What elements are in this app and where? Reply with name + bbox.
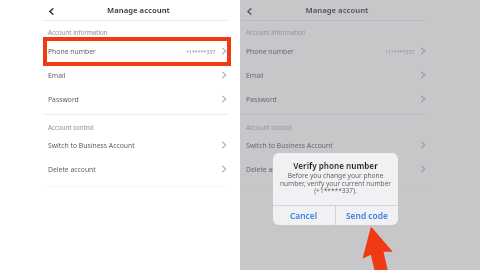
staticText: Account control [246, 123, 292, 131]
button[interactable]: Switch to Business Account [241, 135, 427, 155]
button[interactable]: Phone number [241, 41, 427, 61]
button[interactable]: Send code [336, 206, 398, 225]
button[interactable]: Password [241, 89, 427, 109]
staticText: Cancel [290, 210, 318, 221]
staticText: +1*****337 [385, 48, 415, 55]
button[interactable]: Phone number [43, 41, 228, 61]
button[interactable]: Email [241, 65, 427, 85]
staticText: Phone number [48, 47, 96, 56]
staticText: Send code [346, 210, 388, 221]
staticText: Account information [48, 28, 108, 36]
staticText: Switch to Business Account [48, 141, 135, 150]
staticText: Account control [48, 123, 94, 131]
button[interactable]: Back [44, 4, 58, 18]
button[interactable]: Cancel [273, 206, 335, 225]
button[interactable]: Email [43, 65, 228, 85]
staticText: Password [48, 95, 79, 104]
staticText: +1*****337 [186, 48, 216, 55]
staticText: Before you change your phone number, ver… [278, 171, 393, 195]
staticText: Email [48, 71, 66, 80]
staticText: Switch to Business Account [246, 141, 333, 150]
button[interactable]: Delete account [241, 159, 427, 179]
staticText: Verify phone number [273, 160, 398, 171]
staticText: Manage account [244, 5, 430, 15]
staticText: Delete account [48, 165, 96, 174]
staticText: Password [246, 95, 277, 104]
staticText: Delete account [246, 165, 294, 174]
button[interactable]: Delete account [43, 159, 228, 179]
button[interactable]: Back [242, 4, 256, 18]
staticText: Phone number [246, 47, 294, 56]
staticText: Email [246, 71, 264, 80]
staticText: Account information [246, 28, 306, 36]
button[interactable]: Switch to Business Account [43, 135, 228, 155]
staticText: Manage account [46, 5, 231, 15]
button[interactable]: Password [43, 89, 228, 109]
